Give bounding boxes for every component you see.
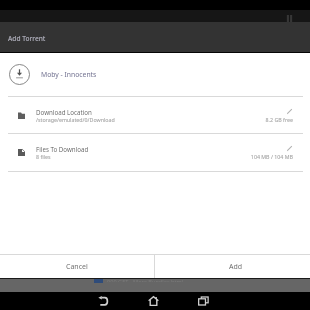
staticText: 104 MB / 104 MB bbox=[193, 153, 293, 160]
staticText: Add Torrent bbox=[8, 34, 46, 43]
button[interactable]: Edit bbox=[285, 144, 294, 153]
button[interactable]: Moby - Innocents bbox=[0, 53, 310, 96]
button[interactable]: Cancel bbox=[0, 255, 154, 278]
button[interactable]: Add bbox=[155, 255, 310, 278]
button[interactable]: Files To Download bbox=[0, 134, 310, 171]
button[interactable]: Home bbox=[140, 292, 167, 310]
staticText: 8.2 GB free bbox=[193, 116, 293, 123]
button[interactable]: Back bbox=[89, 292, 116, 310]
staticText: /storage/emulated/0/Download bbox=[36, 116, 115, 123]
staticText: Download Location bbox=[36, 108, 92, 116]
staticText: Add bbox=[229, 262, 243, 272]
button[interactable]: Recents bbox=[190, 292, 217, 310]
button[interactable]: Download Location bbox=[0, 97, 310, 134]
staticText: 999 GET - More Bundles.html bbox=[107, 279, 184, 282]
button[interactable]: Edit bbox=[285, 107, 294, 116]
staticText: 8 files bbox=[36, 153, 51, 160]
staticText: Cancel bbox=[66, 262, 88, 272]
staticText: Files To Download bbox=[36, 145, 89, 153]
staticText: Moby - Innocents bbox=[41, 70, 97, 79]
